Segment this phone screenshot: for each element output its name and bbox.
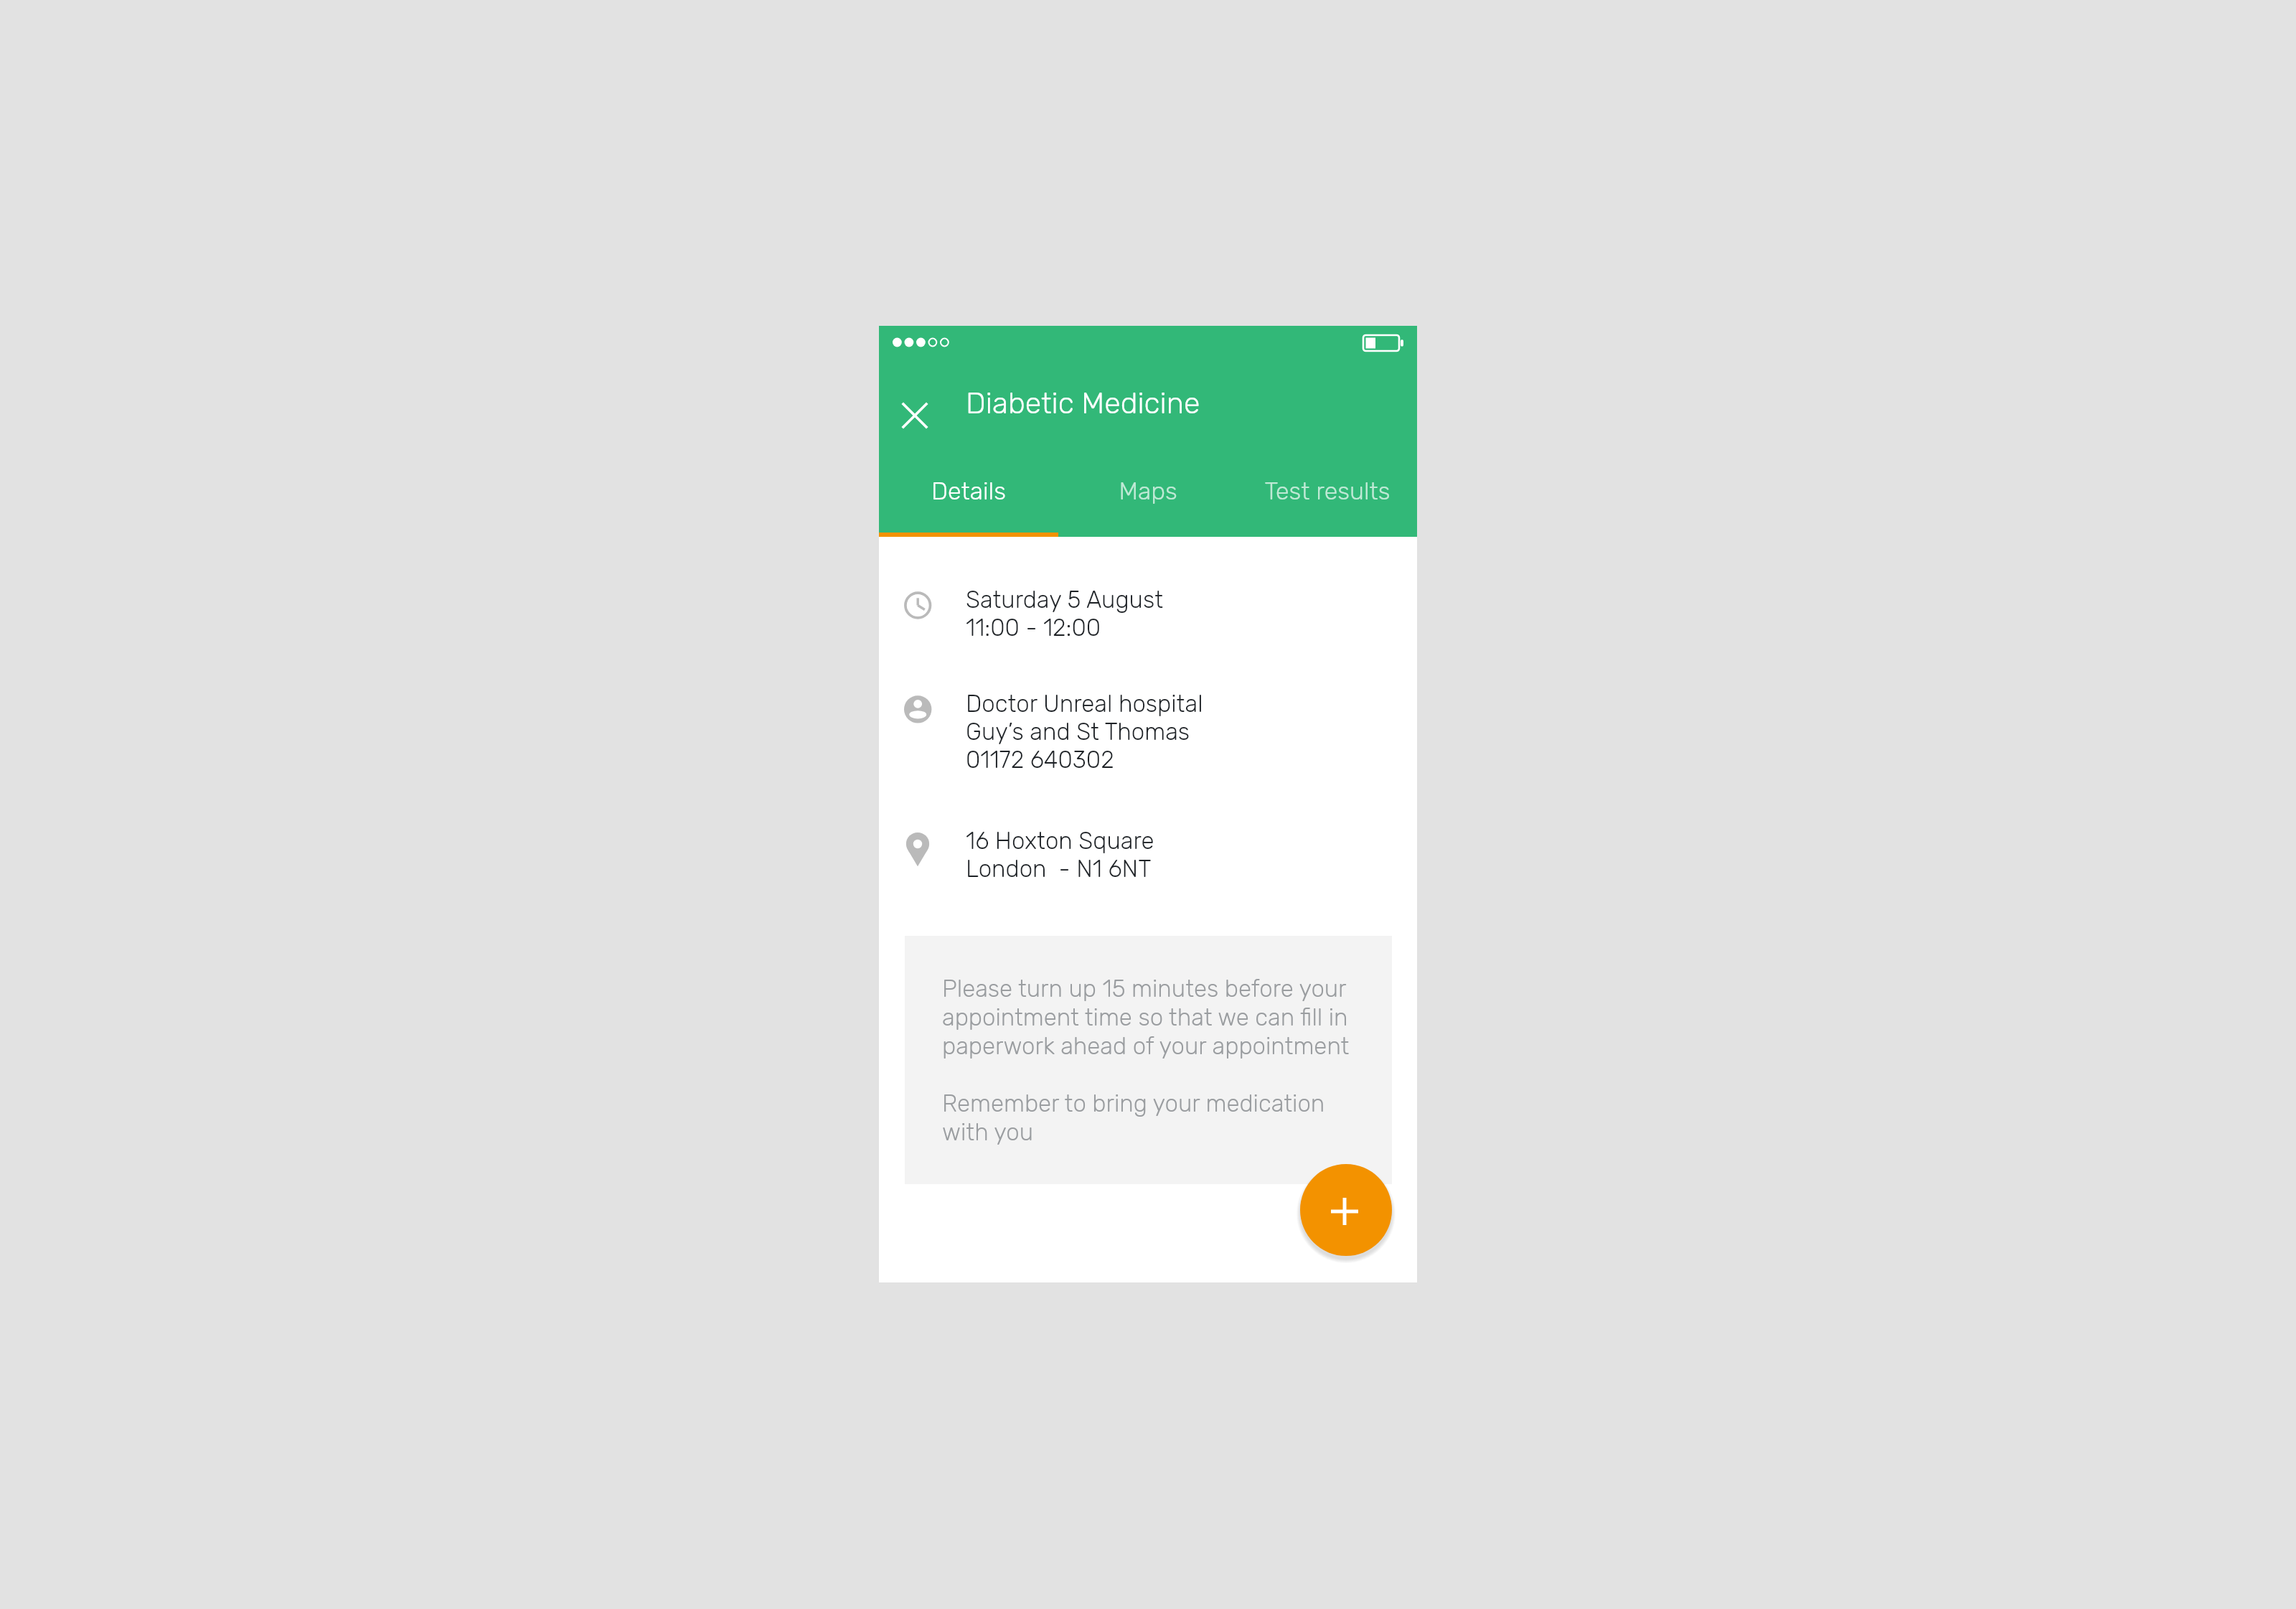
staticText: Doctor Unreal hospital xyxy=(966,690,1203,718)
staticText: Saturday 5 August xyxy=(966,586,1163,614)
staticText: Test results xyxy=(1264,477,1391,505)
staticText: Diabetic Medicine xyxy=(966,386,1200,421)
staticText: Maps xyxy=(1119,477,1177,505)
staticText: 16 Hoxton Square xyxy=(966,827,1154,855)
button[interactable]: Maps xyxy=(1058,465,1238,537)
staticText: London - N1 6NT xyxy=(966,855,1152,883)
other: Battery xyxy=(1363,335,1404,351)
staticText: Please turn up 15 minutes before your ap… xyxy=(942,975,1358,1146)
button[interactable]: Details xyxy=(879,465,1058,537)
staticText: 01172 640302 xyxy=(966,746,1114,774)
staticText: Details xyxy=(931,477,1006,505)
other: Signal strength xyxy=(893,337,951,347)
button[interactable]: Test results xyxy=(1238,465,1417,537)
staticText: 11:00 - 12:00 xyxy=(966,614,1101,642)
button[interactable]: Close xyxy=(894,395,936,436)
button[interactable]: Add xyxy=(1300,1164,1392,1256)
staticText: Guy’s and St Thomas xyxy=(966,718,1190,746)
